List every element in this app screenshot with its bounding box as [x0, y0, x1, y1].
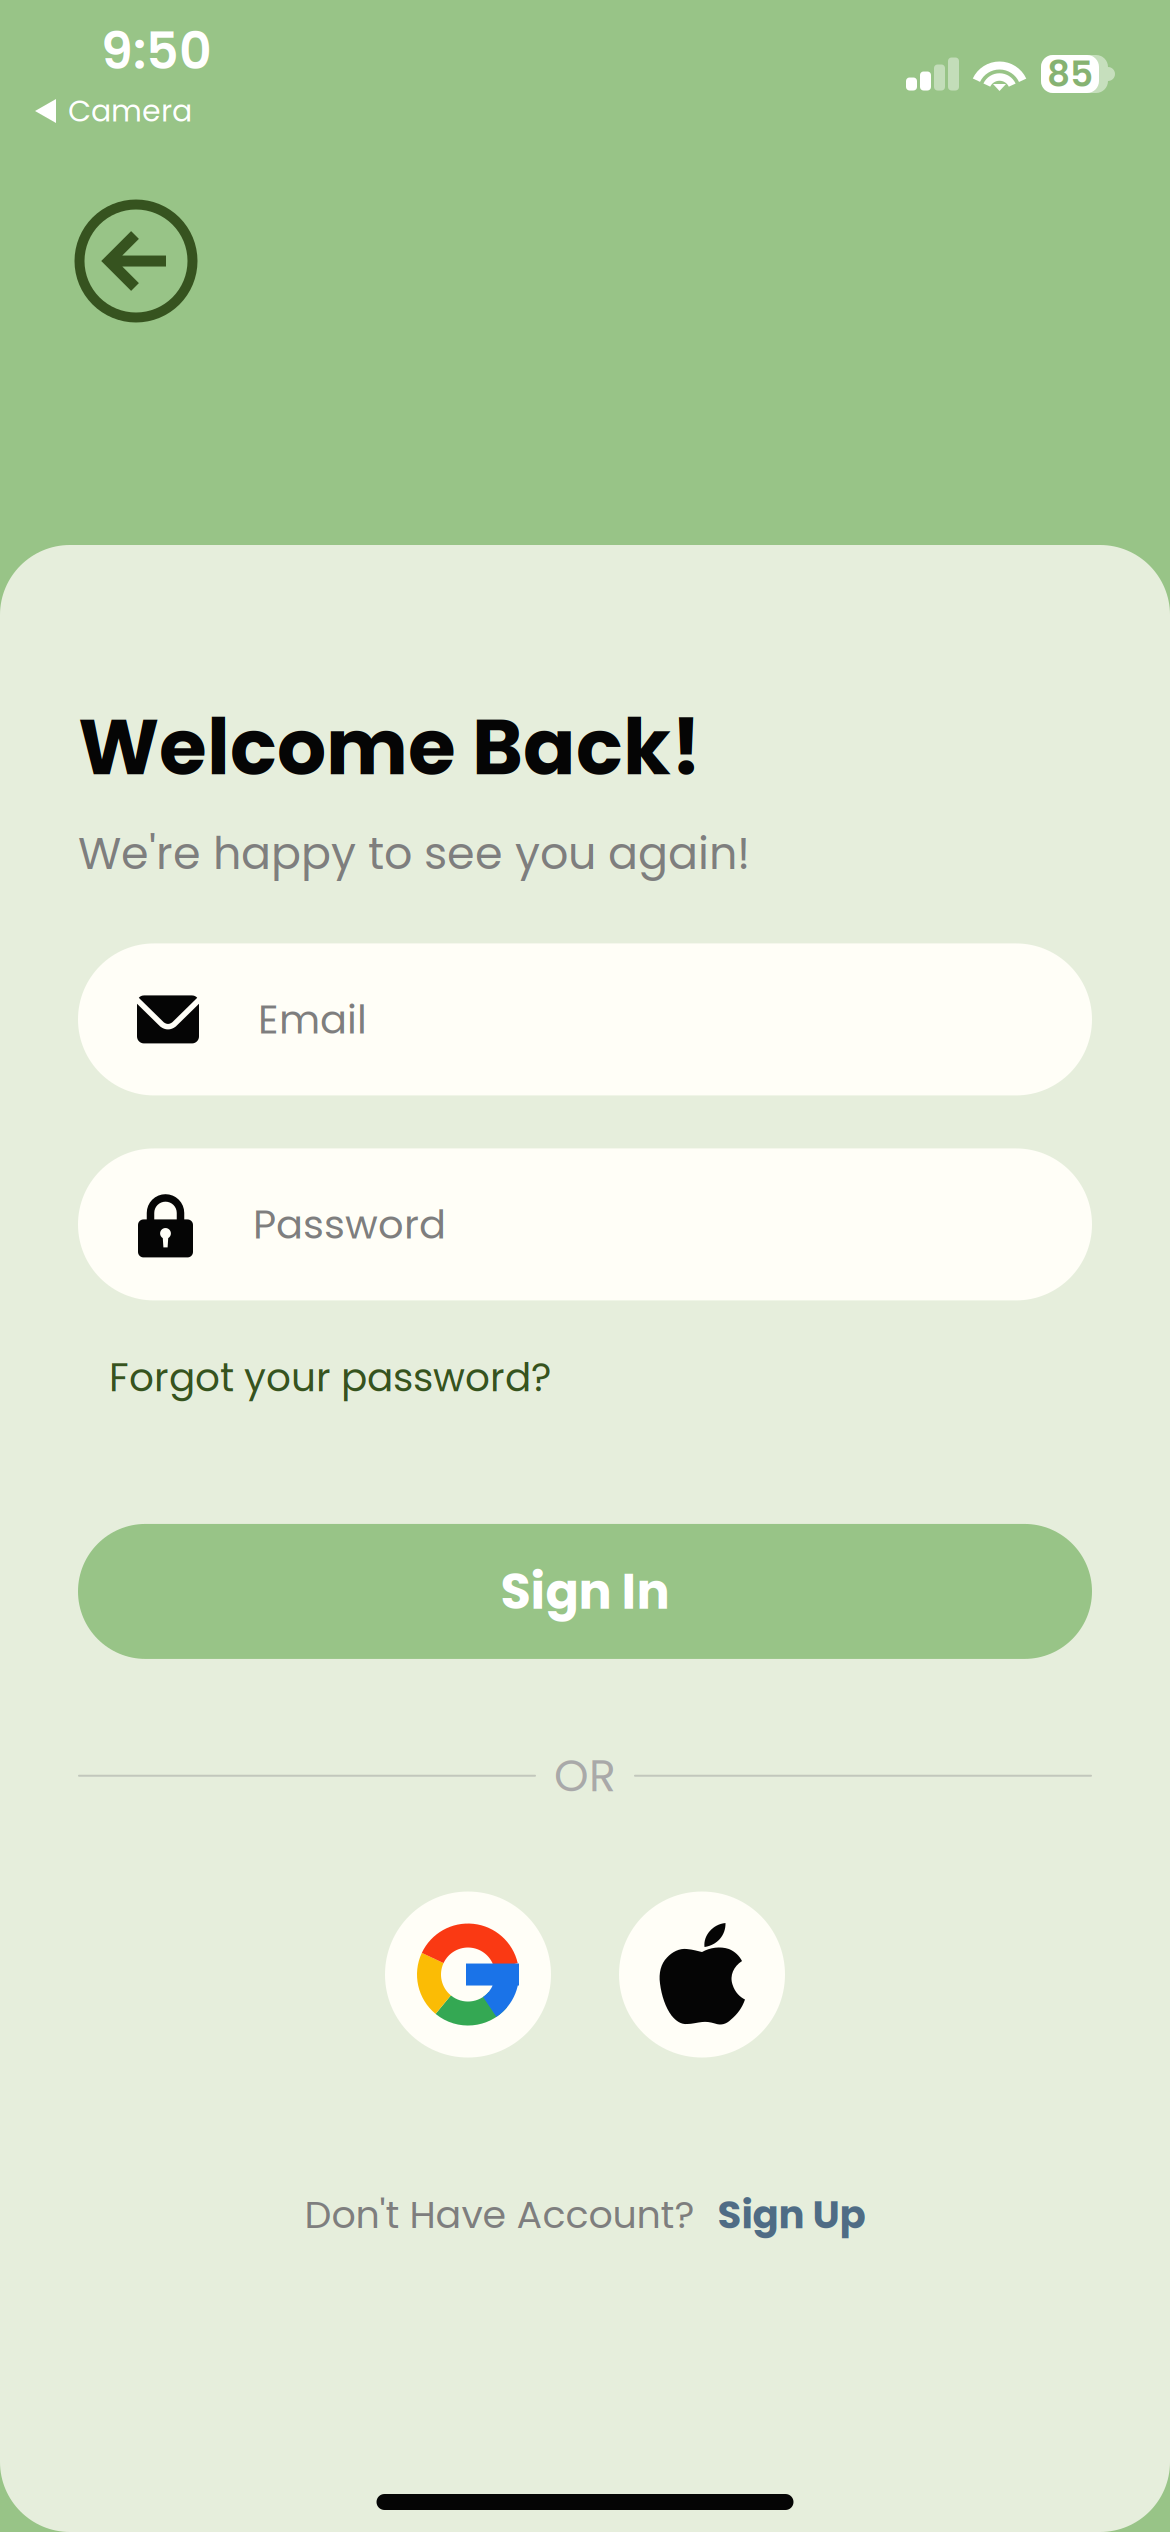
staticText: 9:50 — [101, 15, 212, 86]
button[interactable]: Sign in with Google — [385, 1891, 551, 2057]
staticText: Welcome Back! — [78, 693, 701, 801]
staticText: Camera — [68, 90, 192, 132]
staticText: Email — [258, 991, 367, 1047]
button[interactable]: Back — [60, 185, 212, 337]
staticText: Don't Have Account? — [304, 2188, 694, 2241]
staticText: Password — [253, 1196, 446, 1252]
button[interactable]: Sign In — [78, 1524, 1092, 1659]
staticText: OR — [554, 1745, 616, 1806]
staticText: Forgot your password? — [109, 1350, 551, 1405]
staticText: Sign In — [500, 1557, 669, 1626]
staticText: We're happy to see you again! — [78, 822, 750, 884]
button[interactable]: Sign in with Apple — [619, 1891, 785, 2057]
staticText: Sign Up — [717, 2187, 865, 2242]
button[interactable]: Don't Have Account? — [304, 2187, 865, 2242]
button[interactable]: Forgot your password? — [78, 1338, 551, 1417]
staticText: 85 — [1047, 49, 1093, 99]
